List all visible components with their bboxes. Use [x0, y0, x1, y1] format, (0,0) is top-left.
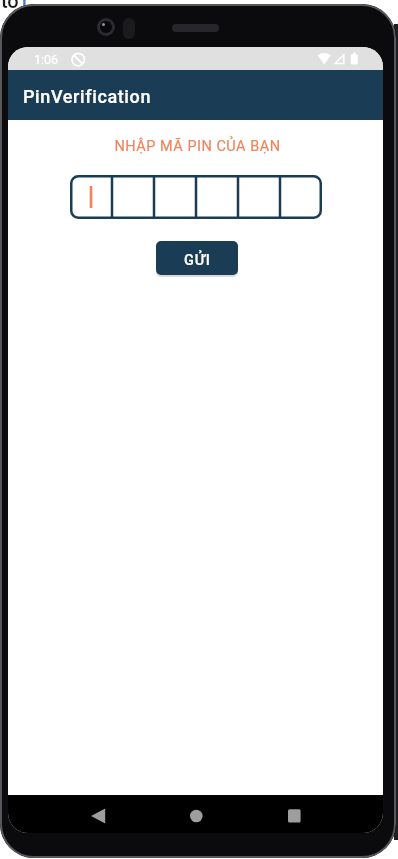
- staticText: NHẬP MÃ PIN CỦA BẠN: [10, 138, 383, 155]
- staticText: 1:06: [34, 52, 59, 67]
- staticText: to: [1, 0, 19, 12]
- staticText: PinVerification: [23, 86, 152, 107]
- button[interactable]: GỬI: [156, 241, 238, 275]
- staticText: r: [22, 0, 30, 12]
- staticText: GỬI: [184, 252, 211, 269]
- button[interactable]: [70, 175, 322, 219]
